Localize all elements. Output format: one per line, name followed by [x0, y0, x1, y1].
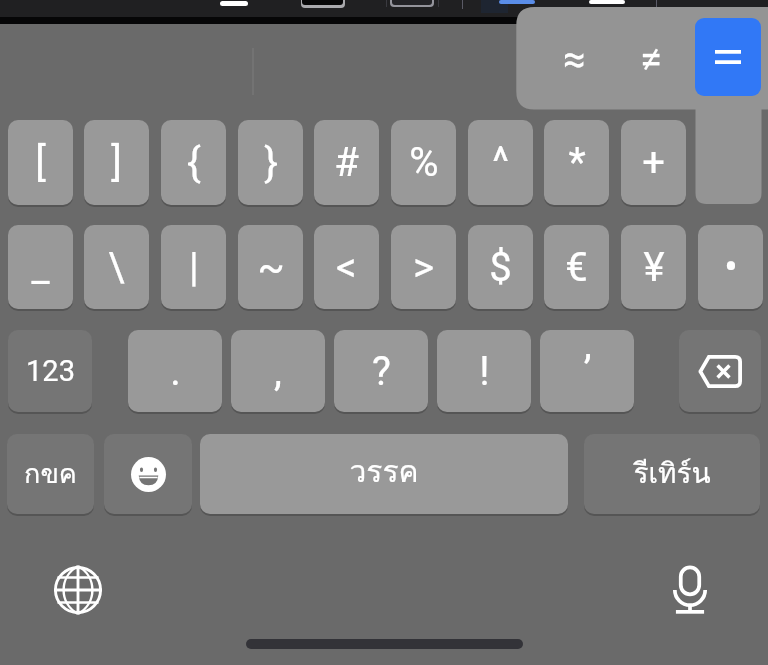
button[interactable]: \	[84, 225, 149, 309]
button[interactable]: รีเทิร์น	[584, 434, 760, 514]
button[interactable]: ’	[540, 330, 634, 412]
staticText: ≠	[640, 36, 662, 83]
button[interactable]: >	[391, 225, 456, 309]
button[interactable]: %	[391, 120, 456, 205]
button[interactable]: กขค	[7, 434, 94, 514]
staticText: !	[479, 348, 490, 395]
button[interactable]: |	[161, 225, 226, 309]
staticText: +	[642, 139, 665, 186]
staticText: ¥	[643, 244, 665, 291]
staticText: >	[413, 244, 434, 291]
button[interactable]: ≠	[616, 23, 686, 95]
staticText: $	[489, 244, 512, 291]
staticText: ^	[492, 139, 509, 186]
staticText: |	[189, 244, 199, 291]
staticText: \	[108, 244, 125, 291]
staticText: %	[409, 139, 439, 186]
staticText: 123	[26, 354, 75, 388]
button[interactable]: ~	[238, 225, 303, 309]
button[interactable]: .	[128, 330, 222, 412]
button[interactable]: [	[8, 120, 73, 205]
button[interactable]: Backspace	[679, 330, 761, 412]
button[interactable]: <	[314, 225, 379, 309]
button[interactable]: Emoji	[104, 434, 192, 514]
staticText: กขค	[24, 452, 77, 495]
button[interactable]: {	[161, 120, 226, 205]
staticText: วรรค	[349, 448, 419, 496]
button[interactable]: #	[314, 120, 379, 205]
button[interactable]: ≈	[539, 23, 609, 95]
button[interactable]: ?	[334, 330, 428, 412]
staticText: <	[336, 244, 357, 291]
staticText: _	[31, 244, 50, 291]
staticText: ?	[372, 348, 391, 395]
button[interactable]: •	[698, 225, 763, 309]
staticText: #	[334, 139, 359, 186]
staticText: €	[565, 244, 588, 291]
button[interactable]: ¥	[621, 225, 686, 309]
button[interactable]: _	[8, 225, 73, 309]
staticText: ]	[111, 139, 122, 186]
staticText: .	[170, 348, 181, 395]
staticText: •	[724, 244, 738, 291]
button[interactable]: !	[437, 330, 531, 412]
button[interactable]: ^	[468, 120, 533, 205]
button[interactable]: }	[238, 120, 303, 205]
staticText: }	[264, 139, 278, 186]
button[interactable]: $	[468, 225, 533, 309]
button[interactable]: Change keyboard language	[44, 556, 112, 624]
staticText: {	[187, 139, 201, 186]
staticText: *	[568, 139, 586, 186]
button[interactable]: วรรค	[200, 434, 568, 514]
staticText: ’	[583, 348, 592, 395]
staticText: ≈	[563, 36, 586, 83]
button[interactable]: *	[544, 120, 609, 205]
staticText: [	[35, 139, 46, 186]
button[interactable]: +	[621, 120, 686, 205]
button[interactable]: Voice input	[656, 556, 724, 624]
button[interactable]: ,	[231, 330, 325, 412]
button[interactable]: €	[544, 225, 609, 309]
staticText: ,	[274, 348, 282, 395]
staticText: รีเทิร์น	[633, 451, 711, 496]
staticText: ~	[257, 244, 285, 291]
button[interactable]	[695, 18, 761, 96]
button[interactable]: ]	[84, 120, 149, 205]
button[interactable]: 123	[8, 330, 92, 412]
